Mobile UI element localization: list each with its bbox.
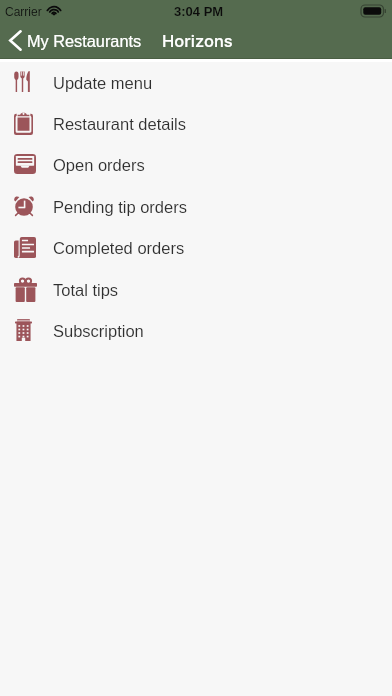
other: Back [8,30,22,51]
staticText: Horizons [162,31,233,51]
button[interactable]: Pending tip orders [0,186,392,227]
button[interactable]: Completed orders [0,227,392,268]
button[interactable]: Subscription [0,310,392,351]
staticText: Pending tip orders [53,198,187,216]
button[interactable]: Open orders [0,144,392,185]
button[interactable]: Restaurant details [0,103,392,144]
other: Wi-Fi [47,5,61,15]
staticText: Restaurant details [53,115,186,133]
staticText: Carrier [5,5,42,18]
staticText: Subscription [53,322,144,340]
button[interactable]: Update menu [0,62,392,103]
staticText: Total tips [53,281,119,299]
staticText: Completed orders [53,239,185,257]
staticText: Open orders [53,156,145,174]
button[interactable]: Back [0,24,150,57]
staticText: Update menu [53,74,153,92]
staticText: My Restaurants [27,32,142,50]
staticText: 3:04 PM [174,4,224,19]
other: Battery [361,5,386,17]
button[interactable]: Total tips [0,269,392,310]
